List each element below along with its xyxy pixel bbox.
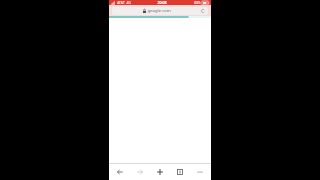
button[interactable]: New tab <box>152 164 168 180</box>
staticText: 4G <box>126 1 131 5</box>
staticText: AT&T <box>117 1 125 5</box>
button[interactable]: google.com <box>112 7 208 15</box>
staticText: 20:08 <box>157 0 167 5</box>
button[interactable]: Reload page <box>200 8 206 14</box>
button[interactable]: Forward <box>132 164 148 180</box>
staticText: 68% <box>194 1 201 5</box>
button[interactable]: Back <box>112 164 128 180</box>
button[interactable]: Tabs <box>172 164 188 180</box>
button[interactable]: More options <box>192 164 208 180</box>
staticText: google.com <box>147 8 171 14</box>
